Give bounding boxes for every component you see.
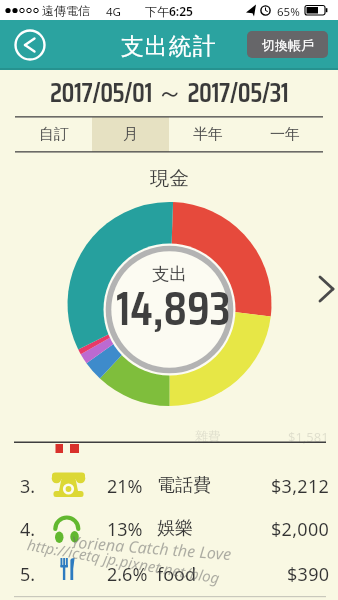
button[interactable]: 切換帳戶 [247, 31, 328, 58]
staticText: 雜費 [195, 428, 221, 444]
staticText: 下午6:25 [145, 3, 193, 18]
staticText: 電話費 [157, 474, 211, 495]
staticText: 支出統計 [121, 32, 217, 61]
staticText: 娛樂 [157, 517, 193, 538]
button[interactable] [0, 464, 338, 508]
staticText: $2,000 [271, 517, 330, 538]
button[interactable] [0, 552, 338, 596]
staticText: 65% [277, 4, 300, 20]
button[interactable] [92, 117, 169, 152]
staticText: 2017/05/01 ～ 2017/05/31 [50, 71, 289, 103]
staticText: 支出 [152, 263, 187, 285]
staticText: Yoriena Catch the Love [70, 531, 233, 565]
staticText: 現金 [150, 166, 189, 190]
staticText: $1,581 [288, 428, 329, 446]
staticText: 13% [107, 517, 143, 538]
staticText: 半年 [193, 125, 223, 144]
staticText: $390 [287, 562, 330, 583]
staticText: 21% [107, 474, 143, 495]
button[interactable] [246, 117, 323, 152]
staticText: 5. [20, 562, 36, 583]
staticText: 4G [106, 4, 121, 20]
staticText: http://icetq jp.pixnet.net/blog [26, 534, 221, 588]
button[interactable] [310, 270, 338, 310]
staticText: 切換帳戶 [262, 37, 314, 53]
staticText: 14,893 [116, 271, 231, 347]
staticText: $3,212 [271, 474, 330, 495]
button[interactable] [15, 117, 92, 152]
staticText: 一年 [270, 125, 300, 144]
staticText: 自訂 [39, 125, 69, 144]
staticText: 3. [20, 474, 36, 495]
button[interactable] [12, 27, 48, 63]
staticText: food [157, 562, 197, 583]
button[interactable] [169, 117, 246, 152]
button[interactable] [0, 508, 338, 552]
staticText: 月 [123, 125, 138, 144]
staticText: 2.6% [107, 562, 148, 583]
staticText: 遠傳電信 [42, 3, 90, 18]
staticText: 4. [20, 517, 36, 538]
